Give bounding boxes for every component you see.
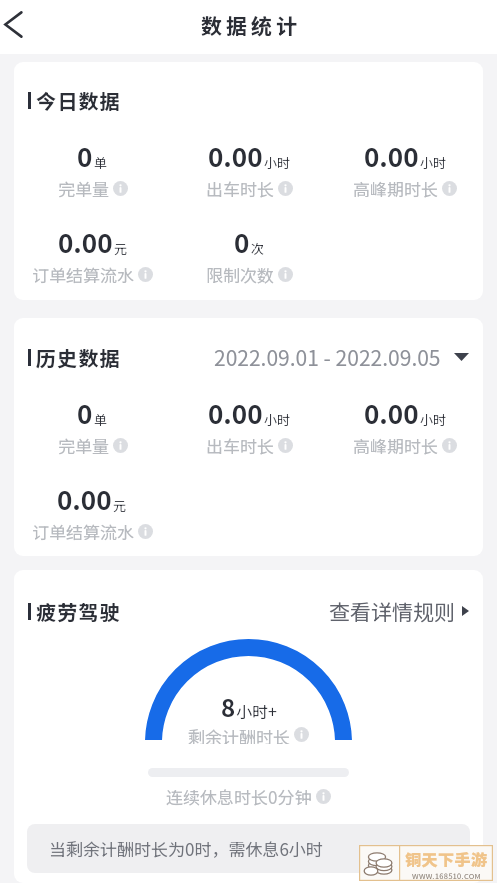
staticText: 0 <box>234 223 250 261</box>
staticText: 完单量 <box>58 433 109 458</box>
staticText: 0.00 <box>364 394 419 432</box>
staticText: 出车时长 <box>206 176 274 201</box>
staticText: 8 <box>221 689 236 724</box>
staticText: 单 <box>94 153 108 172</box>
button[interactable]: 2022.09.01 - 2022.09.05 <box>214 342 469 372</box>
button[interactable]: Back <box>0 2 35 46</box>
staticText: 小时+ <box>236 699 277 722</box>
staticText: 0 <box>77 137 93 175</box>
staticText: 当剩余计酬时长为0时，需休息6小时 <box>49 836 323 861</box>
staticText: 单 <box>94 410 108 429</box>
staticText: 元 <box>113 496 127 515</box>
staticText: 高峰期时长 <box>353 433 438 458</box>
staticText: 小时 <box>420 153 447 172</box>
staticText: 铜天下手游 <box>405 847 488 870</box>
staticText: 疲劳驾驶 <box>36 597 121 626</box>
staticText: 今日数据 <box>36 86 121 115</box>
staticText: 订单结算流水 <box>32 519 134 544</box>
staticText: 0.00 <box>58 223 113 261</box>
staticText: 数据统计 <box>201 10 301 40</box>
staticText: 订单结算流水 <box>32 262 134 287</box>
staticText: 小时 <box>264 153 291 172</box>
staticText: 0 <box>77 394 93 432</box>
staticText: 高峰期时长 <box>353 176 438 201</box>
staticText: 0.00 <box>208 137 263 175</box>
staticText: 小时 <box>264 410 291 429</box>
staticText: 小时 <box>420 410 447 429</box>
staticText: 出车时长 <box>206 433 274 458</box>
staticText: 次 <box>251 239 265 258</box>
staticText: 历史数据 <box>36 343 121 372</box>
staticText: 0.00 <box>364 137 419 175</box>
staticText: WWW.168510.COM <box>412 870 481 881</box>
staticText: 连续休息时长0分钟 <box>166 784 312 809</box>
button[interactable]: 查看详情规则 <box>329 596 469 626</box>
staticText: 0.00 <box>57 480 112 518</box>
staticText: 完单量 <box>58 176 109 201</box>
staticText: 剩余计酬时长 <box>188 724 290 744</box>
staticText: 限制次数 <box>206 262 274 287</box>
staticText: 0.00 <box>208 394 263 432</box>
staticText: 查看详情规则 <box>329 596 455 626</box>
staticText: 元 <box>114 239 128 258</box>
staticText: 2022.09.01 - 2022.09.05 <box>214 342 441 372</box>
